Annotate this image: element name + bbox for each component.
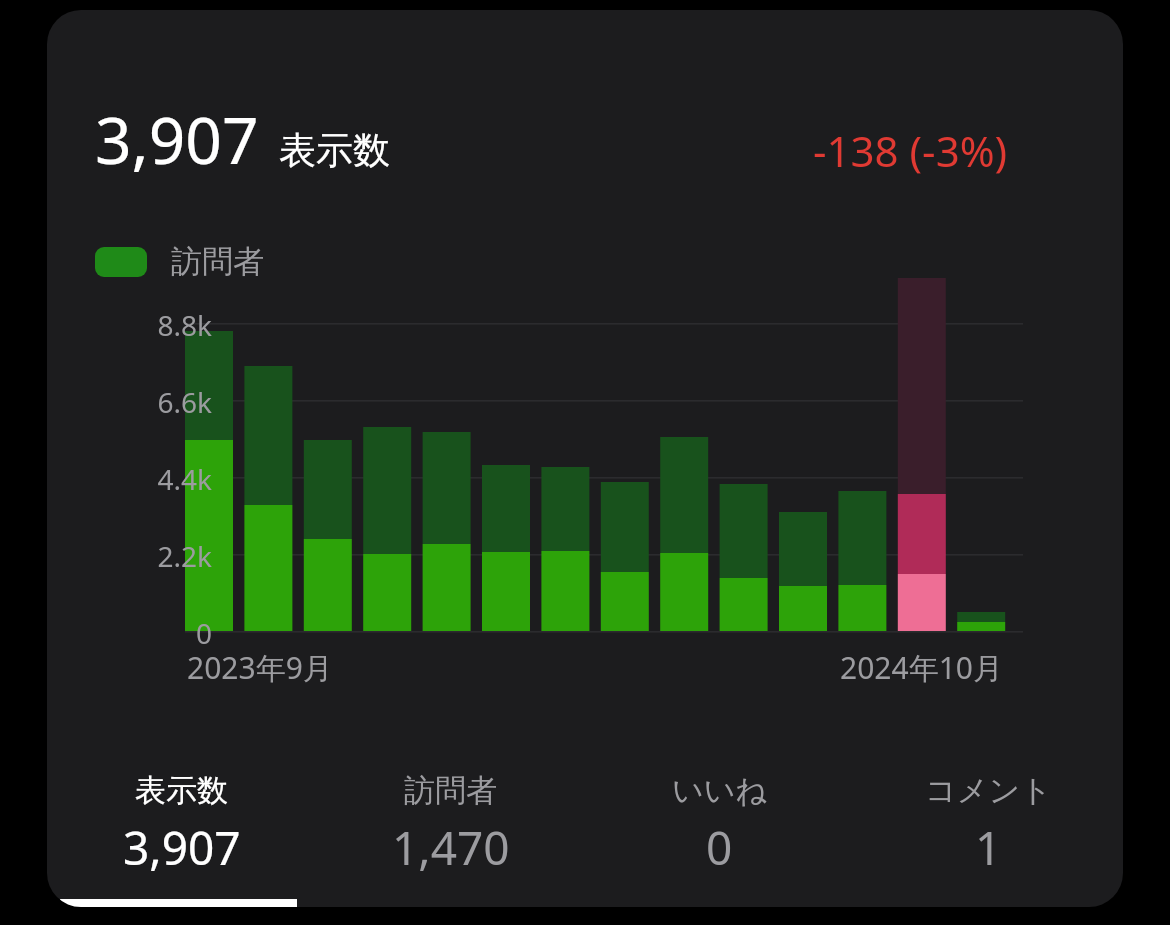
staticText: 訪問者 xyxy=(171,242,264,281)
staticText: 8.8k xyxy=(102,306,212,344)
staticText: -138 (-3%) xyxy=(813,122,1008,179)
staticText: 訪問者 xyxy=(404,771,497,810)
staticText: 4.4k xyxy=(102,460,212,498)
staticText: 0 xyxy=(706,816,733,879)
staticText: 2024年10月 xyxy=(840,647,1003,688)
staticText: 表示数 xyxy=(279,127,390,174)
staticText: 1,470 xyxy=(392,816,510,879)
staticText: 3,907 xyxy=(95,96,259,183)
staticText: 2.2k xyxy=(102,537,212,575)
button[interactable]: 3,907 xyxy=(47,10,1123,907)
button[interactable]: 訪問者 xyxy=(95,242,264,281)
staticText: 6.6k xyxy=(102,383,212,421)
staticText: 3,907 xyxy=(123,816,241,879)
button[interactable]: 訪問者 xyxy=(316,765,585,885)
staticText: 0 xyxy=(102,614,212,652)
staticText: いいね xyxy=(672,771,768,810)
staticText: 2023年9月 xyxy=(187,647,333,688)
button[interactable]: コメント xyxy=(854,765,1123,885)
staticText: コメント xyxy=(925,771,1052,810)
button[interactable]: 表示数 xyxy=(47,765,316,885)
staticText: 表示数 xyxy=(135,771,228,810)
button[interactable]: いいね xyxy=(585,765,854,885)
staticText: 1 xyxy=(975,816,1002,879)
